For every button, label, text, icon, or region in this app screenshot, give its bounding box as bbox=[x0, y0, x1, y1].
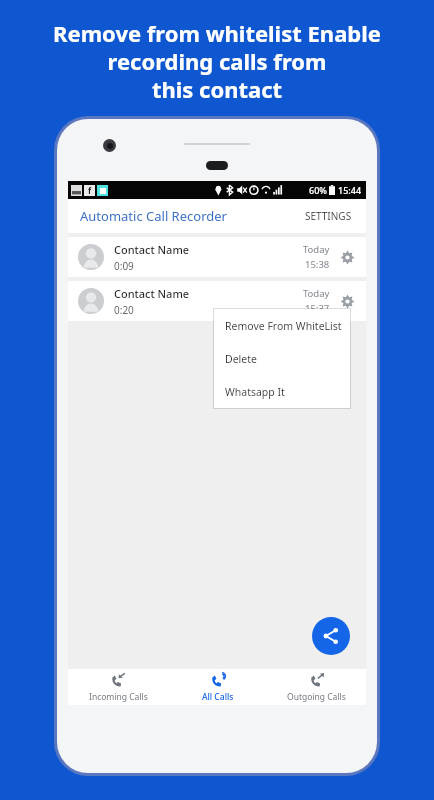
staticText: 60% bbox=[309, 184, 327, 196]
button[interactable]: Incoming Calls bbox=[68, 669, 168, 705]
staticText: 0:20 bbox=[114, 303, 134, 317]
button[interactable]: SETTINGS bbox=[303, 205, 354, 227]
button[interactable]: Delete bbox=[214, 342, 350, 375]
staticText: 15:44 bbox=[338, 184, 362, 196]
button[interactable]: All Calls bbox=[168, 669, 267, 705]
staticText: 15:38 bbox=[305, 258, 330, 271]
button[interactable]: Contact Name bbox=[68, 237, 366, 277]
button[interactable]: Outgoing Calls bbox=[267, 669, 366, 705]
button[interactable]: Whatsapp It bbox=[214, 375, 350, 408]
staticText: Contact Name bbox=[114, 286, 190, 301]
staticText: Automatic Call Recorder bbox=[80, 207, 227, 225]
staticText: SETTINGS bbox=[305, 209, 352, 223]
staticText: f bbox=[88, 185, 92, 196]
staticText: Incoming Calls bbox=[89, 691, 148, 703]
button[interactable]: Options bbox=[336, 246, 358, 268]
staticText: 0:09 bbox=[114, 259, 134, 273]
staticText: 15:37 bbox=[305, 302, 330, 315]
button[interactable]: Options bbox=[336, 290, 358, 312]
staticText: Outgoing Calls bbox=[287, 691, 346, 703]
staticText: Whatsapp It bbox=[225, 385, 285, 399]
button[interactable]: Share bbox=[312, 617, 350, 655]
button[interactable]: Contact Name bbox=[68, 281, 366, 321]
staticText: Contact Name bbox=[114, 242, 190, 257]
button[interactable]: Remove From WhiteList bbox=[214, 309, 350, 342]
button[interactable]: Automatic Call Recorder bbox=[68, 199, 366, 233]
staticText: Today bbox=[303, 287, 330, 300]
staticText: Today bbox=[303, 243, 330, 256]
staticText: Remove from whitelist Enable recording c… bbox=[53, 18, 381, 104]
staticText: Delete bbox=[225, 352, 257, 366]
staticText: All Calls bbox=[202, 691, 234, 703]
staticText: Remove From WhiteList bbox=[225, 319, 342, 333]
